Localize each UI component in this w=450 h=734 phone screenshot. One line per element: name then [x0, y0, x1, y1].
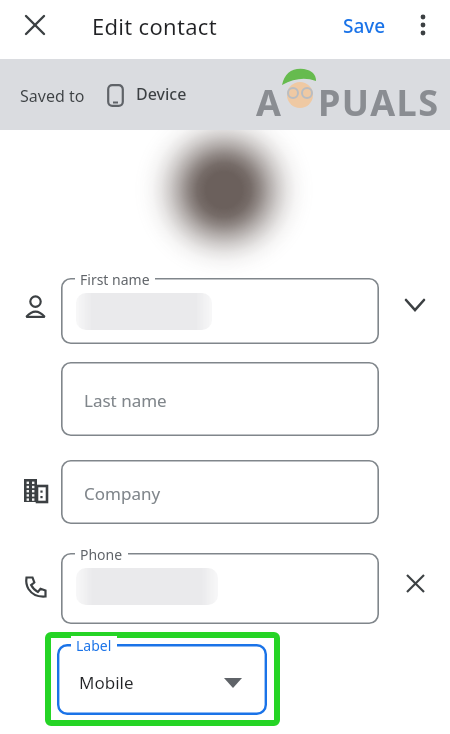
button[interactable] — [399, 567, 431, 599]
button[interactable] — [61, 362, 379, 436]
staticText: Edit contact — [92, 11, 217, 41]
staticText: Device — [136, 83, 187, 105]
staticText: Mobile — [79, 671, 134, 694]
staticText: Last name — [84, 389, 167, 412]
button[interactable] — [216, 666, 250, 700]
button[interactable] — [406, 8, 440, 42]
button[interactable] — [61, 460, 379, 524]
staticText: Phone — [80, 545, 123, 564]
button[interactable]: Label — [57, 644, 267, 715]
staticText: A — [256, 78, 281, 127]
staticText: First name — [80, 270, 150, 289]
staticText: Label — [76, 636, 112, 655]
button[interactable]: First name — [61, 278, 379, 344]
button[interactable]: Phone — [61, 553, 379, 624]
staticText: PUALS — [318, 78, 440, 127]
button[interactable] — [14, 4, 56, 46]
staticText: Company — [84, 482, 161, 505]
button[interactable]: Save — [333, 3, 396, 49]
button[interactable]: Device — [130, 77, 193, 111]
staticText: Save — [343, 13, 386, 39]
button[interactable] — [398, 288, 432, 322]
staticText: Saved to — [20, 85, 85, 107]
